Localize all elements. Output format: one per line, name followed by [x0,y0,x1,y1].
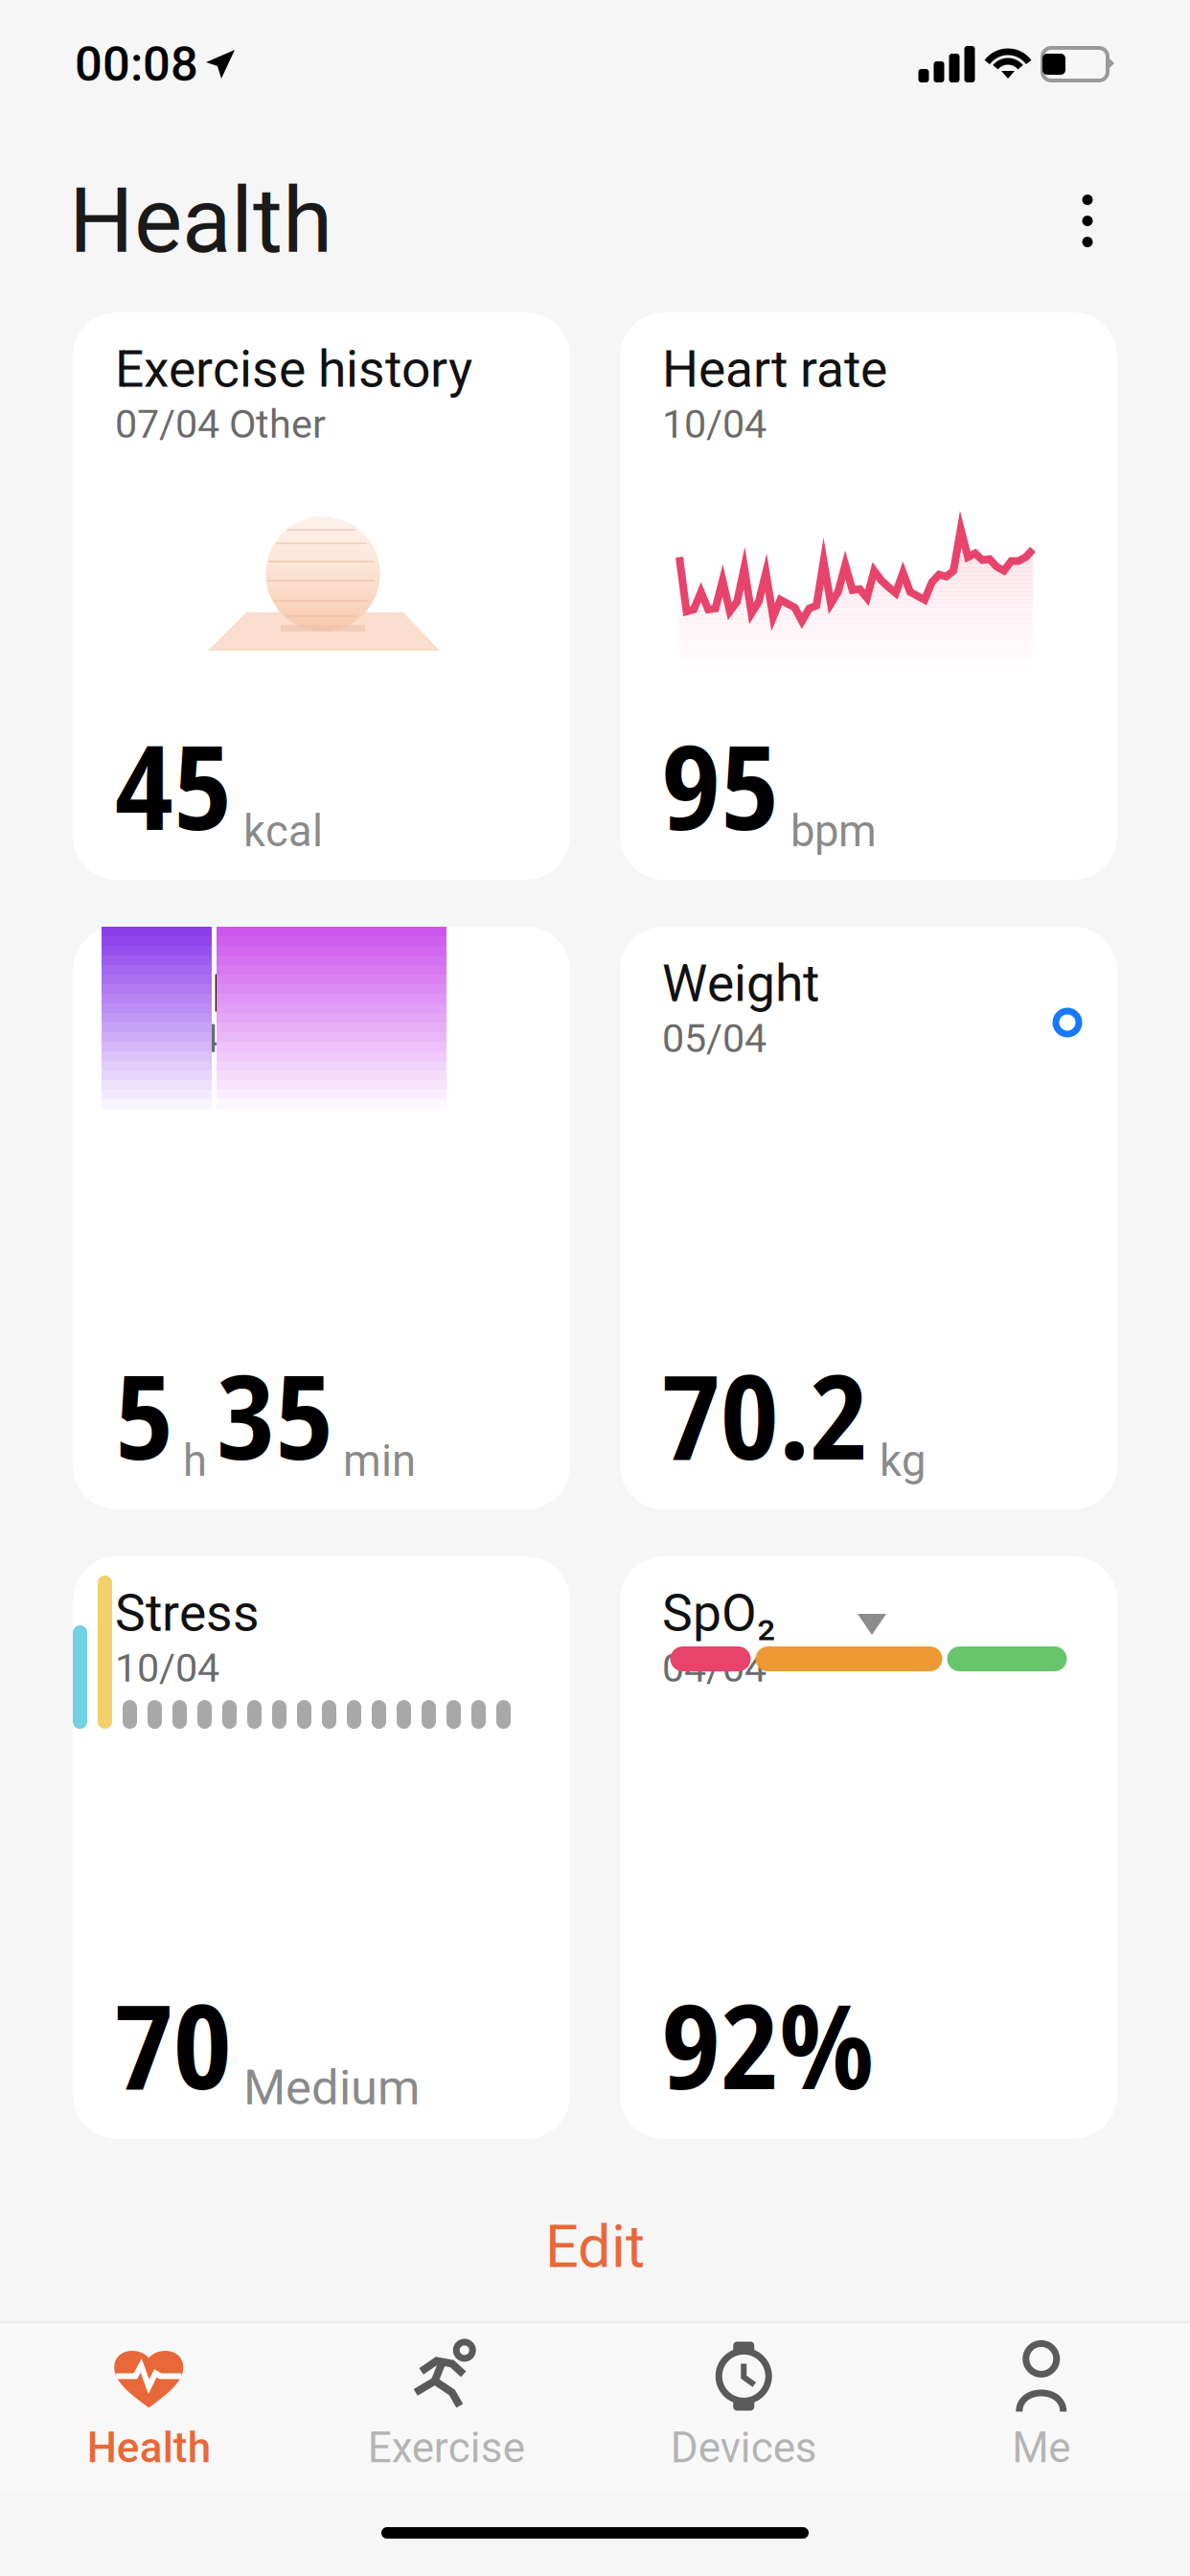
staticText: 10/04 [115,1645,219,1691]
staticText: 04/04 [662,1645,767,1691]
staticText: 70 [115,1964,232,2124]
button[interactable]: Health [0,2323,297,2490]
staticText: Edit [545,2212,645,2281]
staticText: 95 [662,704,779,864]
staticText: Heart rate [662,339,887,399]
staticText: Stress [115,1583,260,1643]
staticText: 10/04 [662,401,767,447]
button[interactable]: Me [892,2323,1190,2490]
staticText: h [183,1435,207,1486]
button[interactable]: Exercise history [73,312,570,880]
staticText: Weight [662,954,819,1013]
staticText: 09/04 [115,1015,219,1062]
staticText: kg [880,1435,926,1486]
button[interactable]: Stress [73,1556,570,2139]
staticText: 70.2 [662,1334,868,1494]
staticText: 5 [115,1334,173,1494]
staticText: 35 [217,1334,333,1494]
staticText: SpO₂ [662,1583,776,1643]
button[interactable]: Sleep [73,927,570,1509]
button[interactable]: Heart rate [620,312,1117,880]
staticText: Me [1012,2423,1070,2472]
button[interactable]: SpO₂ [620,1556,1117,2139]
staticText: Devices [671,2423,817,2472]
button[interactable]: Weight [620,927,1117,1509]
staticText: bpm [790,806,877,857]
staticText: Health [69,168,332,274]
staticText: Sleep [115,954,240,1013]
button[interactable]: Devices [595,2323,892,2490]
button[interactable]: More options [1054,178,1121,264]
staticText: Exercise history [115,339,472,399]
staticText: min [343,1435,416,1486]
staticText: 07/04 Other [115,401,326,447]
staticText: Exercise [368,2423,525,2472]
staticText: 00:08 [75,36,198,93]
button[interactable]: Edit [0,2197,1190,2297]
staticText: kcal [243,806,323,857]
staticText: Health [87,2423,211,2472]
staticText: Medium [243,2059,420,2116]
staticText: 05/04 [662,1015,767,1062]
staticText: 92% [662,1964,874,2124]
staticText: 45 [115,704,232,864]
button[interactable]: Exercise [297,2323,595,2490]
